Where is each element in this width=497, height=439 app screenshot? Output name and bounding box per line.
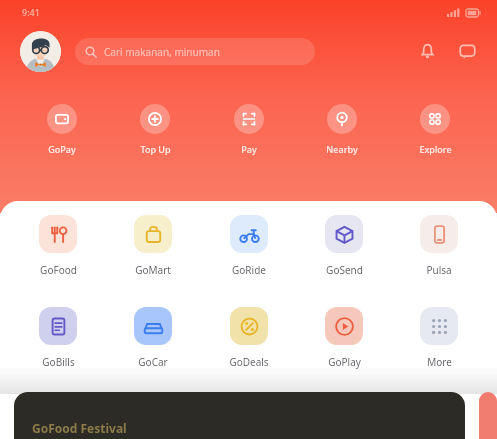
staticText: Top Up [140, 143, 171, 155]
button[interactable]: Cari makanan, minuman [75, 38, 315, 65]
button[interactable]: GoFood [15, 215, 101, 277]
staticText: GoFood [40, 263, 77, 277]
button[interactable]: Explore [396, 104, 474, 155]
button[interactable]: GoFood Festival [14, 392, 465, 439]
button[interactable]: More [396, 307, 482, 369]
button[interactable]: Pay [210, 104, 288, 155]
staticText: Pay [241, 143, 257, 155]
staticText: GoFood Festival [32, 420, 127, 436]
button[interactable]: GoDeals [206, 307, 292, 369]
staticText: GoPay [48, 143, 76, 155]
button[interactable]: Top Up [116, 104, 194, 155]
staticText: GoBills [42, 355, 75, 369]
staticText: 9:41 [22, 6, 40, 18]
button[interactable] [479, 392, 497, 439]
button[interactable]: Notifications [411, 35, 443, 67]
staticText: Pulsa [426, 263, 452, 277]
button[interactable]: GoMart [110, 215, 196, 277]
staticText: Cari makanan, minuman [104, 45, 220, 59]
button[interactable]: Pulsa [396, 215, 482, 277]
staticText: GoCar [138, 355, 168, 369]
staticText: Nearby [326, 143, 358, 155]
staticText: GoPlay [328, 355, 361, 369]
staticText: GoRide [232, 263, 266, 277]
staticText: GoMart [135, 263, 171, 277]
staticText: More [427, 355, 452, 369]
button[interactable]: GoBills [15, 307, 101, 369]
button[interactable]: Nearby [303, 104, 381, 155]
staticText: GoDeals [229, 355, 269, 369]
button[interactable]: GoPay [23, 104, 101, 155]
button[interactable]: GoPlay [301, 307, 387, 369]
button[interactable]: GoSend [301, 215, 387, 277]
staticText: GoSend [326, 263, 363, 277]
button[interactable]: GoRide [206, 215, 292, 277]
button[interactable]: GoCar [110, 307, 196, 369]
button[interactable]: Chat [451, 35, 483, 67]
button[interactable]: Profile [20, 31, 61, 72]
staticText: Explore [419, 143, 452, 155]
